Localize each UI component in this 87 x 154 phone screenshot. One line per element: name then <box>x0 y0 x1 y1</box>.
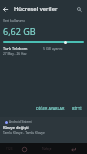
staticText: Türkçe <box>42 147 52 151</box>
staticText: 6,62 GB <box>3 25 36 37</box>
button[interactable]: Back <box>0 4 11 15</box>
staticText: Android Sistemi <box>9 120 32 124</box>
button[interactable]: Search <box>74 4 85 15</box>
staticText: BİTTİ <box>72 106 82 111</box>
button[interactable]: DİĞER AYARLAR <box>34 104 67 113</box>
staticText: 5 GB uyarısı <box>43 46 63 51</box>
staticText: DİĞER AYARLAR <box>36 106 65 111</box>
staticText: ?123 <box>6 147 13 151</box>
button[interactable]: Enter <box>68 144 78 154</box>
staticText: Turk Telekom <box>3 46 28 51</box>
staticText: Tamlu Klavye - Tamlu Klavye <box>3 131 45 135</box>
button[interactable]: Symbols <box>4 144 14 154</box>
staticText: Veri kullanımı <box>3 18 25 23</box>
button[interactable]: Emoji <box>19 144 29 154</box>
staticText: 27 May - 26 Haz <box>3 52 27 56</box>
staticText: Hücresel veriler <box>14 5 58 13</box>
button[interactable]: BİTTİ <box>70 104 84 113</box>
staticText: Klavye değişti <box>3 125 29 130</box>
button[interactable]: Android Sistemi <box>0 117 87 143</box>
